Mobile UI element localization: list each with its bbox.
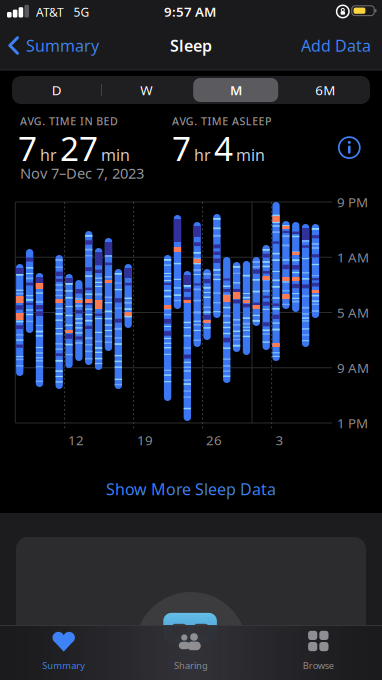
staticText: Add Data	[301, 35, 371, 56]
staticText: 19	[137, 431, 153, 449]
staticText: min	[236, 144, 265, 165]
staticText: hr	[40, 144, 57, 165]
staticText: min	[101, 144, 130, 165]
staticText: Summary	[42, 659, 85, 672]
staticText: Sharing	[174, 659, 208, 672]
staticText: 5 AM	[337, 304, 369, 321]
staticText: 12	[68, 431, 84, 449]
button[interactable]: Show More Sleep Data	[61, 472, 321, 506]
button[interactable]: Browse	[280, 625, 356, 680]
button[interactable]: M	[191, 76, 280, 104]
staticText: 1 PM	[337, 414, 368, 432]
staticText: 6M	[315, 81, 335, 99]
staticText: AT&T	[36, 4, 64, 20]
button[interactable]: D	[12, 76, 101, 104]
staticText: Summary	[26, 35, 99, 56]
staticText: Sleep	[170, 35, 212, 56]
button[interactable]: Sharing	[153, 625, 229, 680]
staticText: Nov 7–Dec 7, 2023	[20, 163, 144, 183]
button[interactable]: Summary	[26, 625, 102, 680]
staticText: AVG. TIME IN BED	[20, 114, 118, 128]
staticText: 9 AM	[337, 359, 369, 377]
staticText: W	[140, 81, 152, 99]
button[interactable]: 6M	[281, 76, 370, 104]
staticText: 3	[275, 431, 283, 449]
staticText: 5G	[73, 4, 89, 20]
staticText: hr	[194, 144, 211, 165]
button[interactable]: W	[102, 76, 191, 104]
staticText: Browse	[303, 659, 334, 672]
staticText: Show More Sleep Data	[106, 478, 276, 500]
staticText: M	[230, 81, 242, 99]
staticText: 1 AM	[337, 248, 369, 266]
staticText: 9:57 AM	[164, 3, 216, 20]
staticText: 7	[18, 126, 37, 170]
staticText: 9 PM	[337, 193, 368, 211]
button[interactable]: Add Data	[271, 28, 371, 62]
staticText: 26	[206, 431, 222, 449]
staticText: 7	[172, 126, 191, 170]
staticText: D	[52, 81, 62, 99]
button[interactable]: Info	[335, 134, 363, 162]
button[interactable]: Summary	[6, 28, 126, 62]
staticText: 4	[214, 126, 233, 170]
staticText: 27	[60, 126, 98, 170]
staticText: AVG. TIME ASLEEP	[172, 114, 272, 128]
